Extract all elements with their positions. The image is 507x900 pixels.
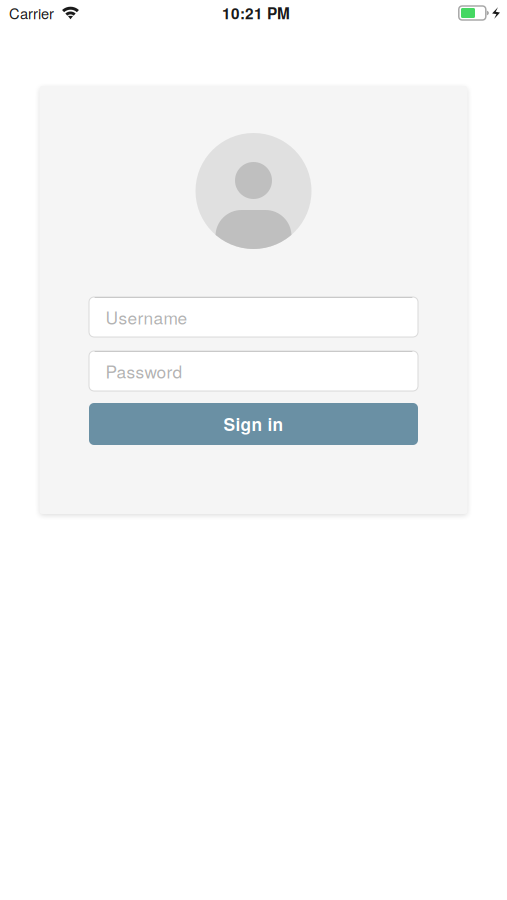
staticText: Password: [105, 359, 182, 383]
button[interactable]: Sign in: [89, 403, 418, 445]
staticText: 10:21 PM: [222, 2, 290, 24]
staticText: Username: [105, 305, 187, 329]
button[interactable]: Username: [89, 297, 418, 337]
button[interactable]: Password: [89, 351, 418, 391]
staticText: Carrier: [9, 2, 54, 23]
staticText: Sign in: [223, 412, 283, 436]
